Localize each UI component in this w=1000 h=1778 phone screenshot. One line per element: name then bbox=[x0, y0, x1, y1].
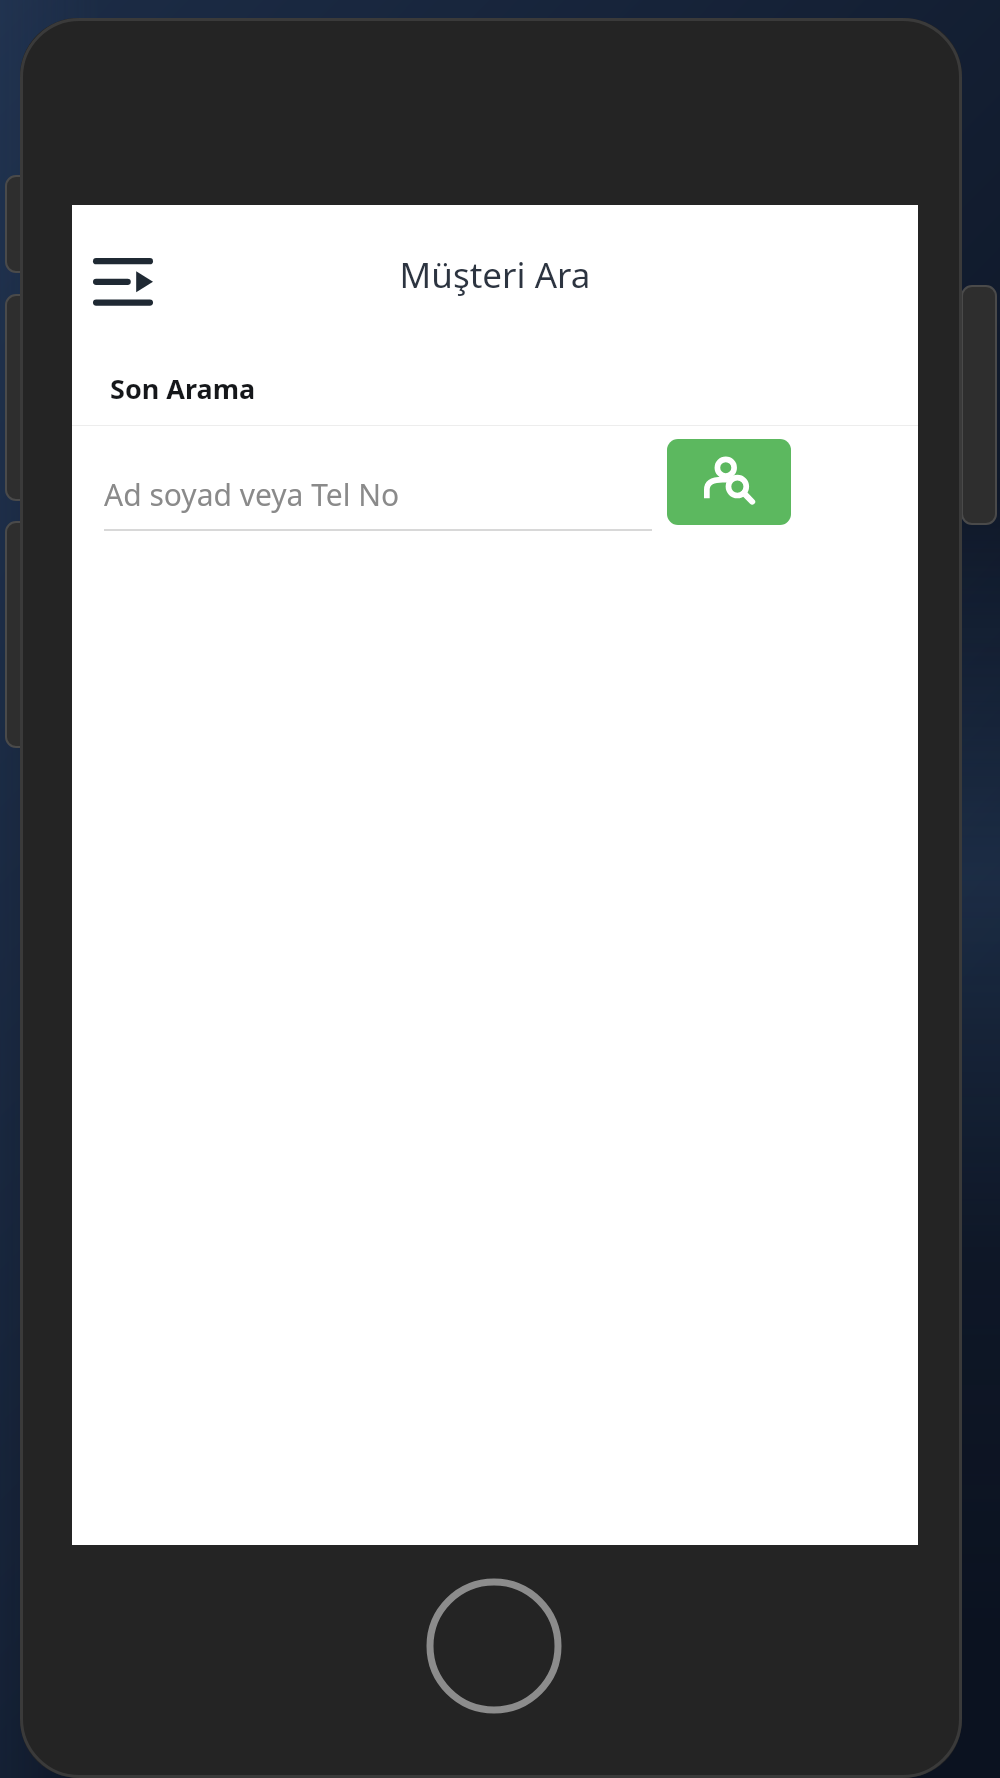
staticText: Son Arama bbox=[110, 370, 256, 407]
staticText: Ad soyad veya Tel No bbox=[104, 474, 400, 515]
button[interactable]: Ad soyad veya Tel No bbox=[104, 474, 652, 531]
button[interactable]: Open navigation menu bbox=[76, 235, 170, 329]
staticText: Müşteri Ara bbox=[72, 251, 918, 299]
button[interactable]: Search customer bbox=[667, 439, 791, 525]
